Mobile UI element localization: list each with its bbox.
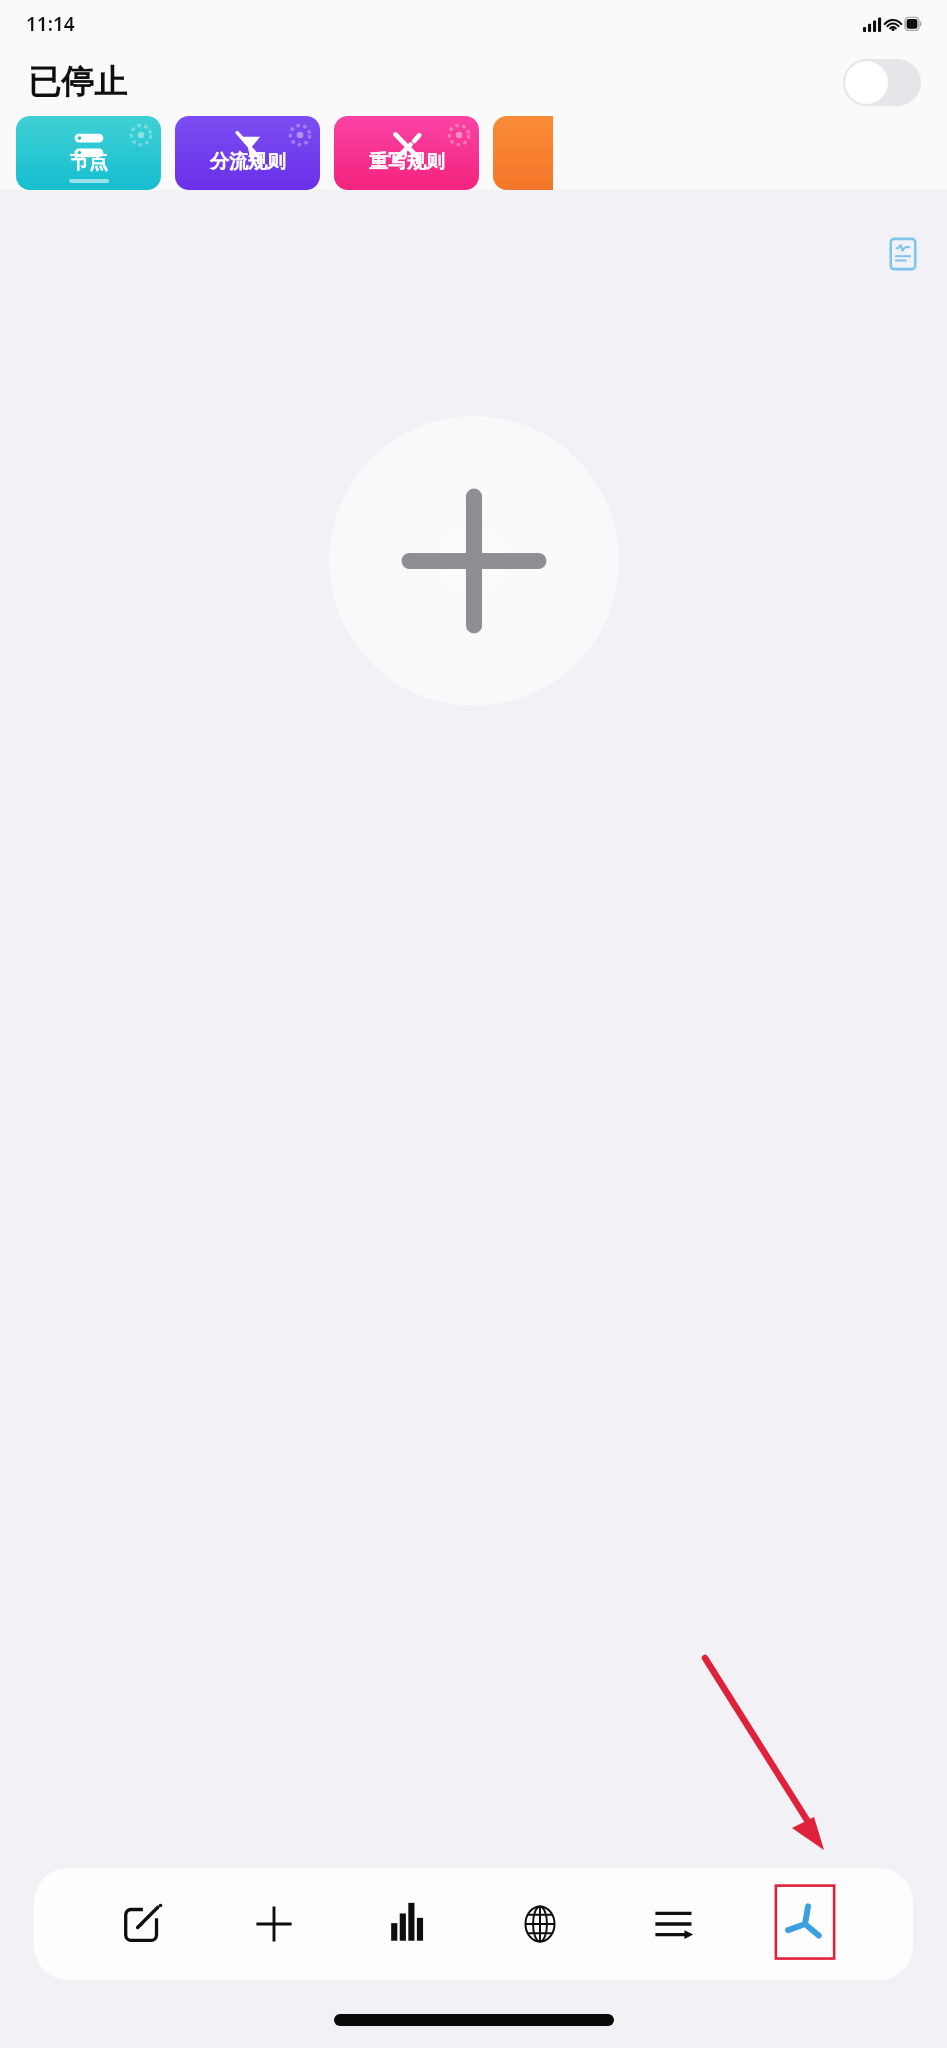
- staticText: 已停止: [28, 61, 127, 103]
- button[interactable]: More: [493, 116, 553, 190]
- button[interactable]: Network: [509, 1876, 571, 1972]
- staticText: 11:14: [26, 11, 75, 37]
- button[interactable]: 分流规则: [175, 116, 320, 190]
- button[interactable]: 节点: [16, 116, 161, 190]
- button[interactable]: Rules: [642, 1876, 704, 1972]
- button[interactable]: Statistics: [376, 1876, 438, 1972]
- button[interactable]: Logs: [885, 236, 921, 272]
- button[interactable]: 重写规则: [334, 116, 479, 190]
- staticText: 分流规则: [210, 150, 286, 174]
- button[interactable]: Add profile: [329, 416, 619, 706]
- staticText: 节点: [70, 150, 108, 174]
- button[interactable]: Add: [243, 1876, 305, 1972]
- staticText: 重写规则: [369, 150, 445, 174]
- button[interactable]: Compose: [111, 1876, 173, 1972]
- button[interactable]: Toggle proxy: [843, 59, 921, 106]
- button[interactable]: More tools: [774, 1876, 836, 1972]
